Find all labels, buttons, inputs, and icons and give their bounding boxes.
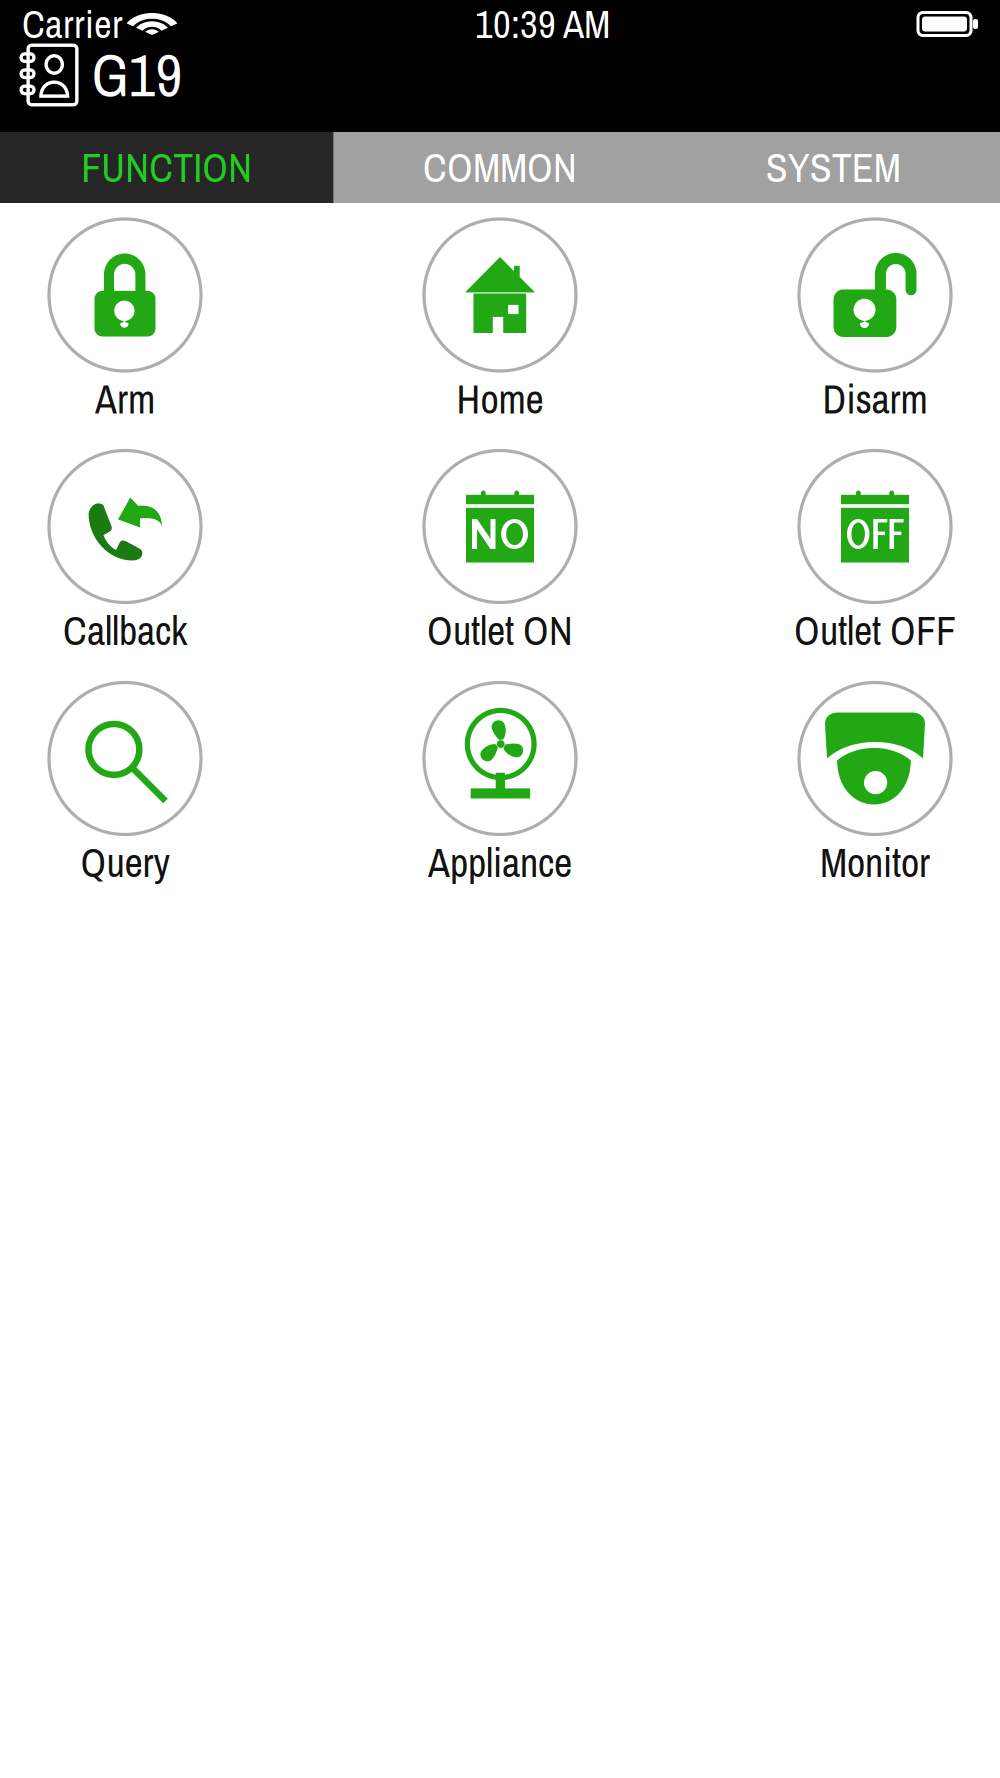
button[interactable]: FUNCTION — [0, 132, 333, 203]
staticText: Disarm — [822, 372, 927, 426]
staticText: Outlet OFF — [794, 603, 956, 657]
staticText: Monitor — [820, 835, 930, 889]
button[interactable]: SYSTEM — [667, 132, 1000, 203]
staticText: Carrier — [22, 0, 123, 50]
button[interactable]: Disarm — [750, 219, 1000, 434]
button[interactable]: Monitor — [750, 682, 1000, 897]
staticText: Callback — [63, 603, 187, 657]
button[interactable]: Outlet OFF — [750, 450, 1000, 665]
staticText: 10:39 AM — [475, 0, 610, 50]
button[interactable]: COMMON — [333, 132, 667, 203]
staticText: Outlet ON — [427, 603, 573, 657]
staticText: FUNCTION — [81, 141, 252, 194]
staticText: COMMON — [423, 141, 577, 194]
staticText: Query — [80, 835, 169, 889]
button[interactable]: Contacts — [20, 44, 78, 106]
staticText: Arm — [95, 372, 155, 426]
button[interactable]: Callback — [0, 450, 250, 665]
button[interactable]: Arm — [0, 219, 250, 434]
staticText: Home — [456, 372, 543, 426]
button[interactable]: Outlet ON — [375, 450, 625, 665]
button[interactable]: Appliance — [375, 682, 625, 897]
button[interactable]: Home — [375, 219, 625, 434]
staticText: Appliance — [428, 835, 572, 889]
button[interactable]: Query — [0, 682, 250, 897]
staticText: G19 — [91, 35, 182, 114]
staticText: SYSTEM — [766, 141, 901, 194]
